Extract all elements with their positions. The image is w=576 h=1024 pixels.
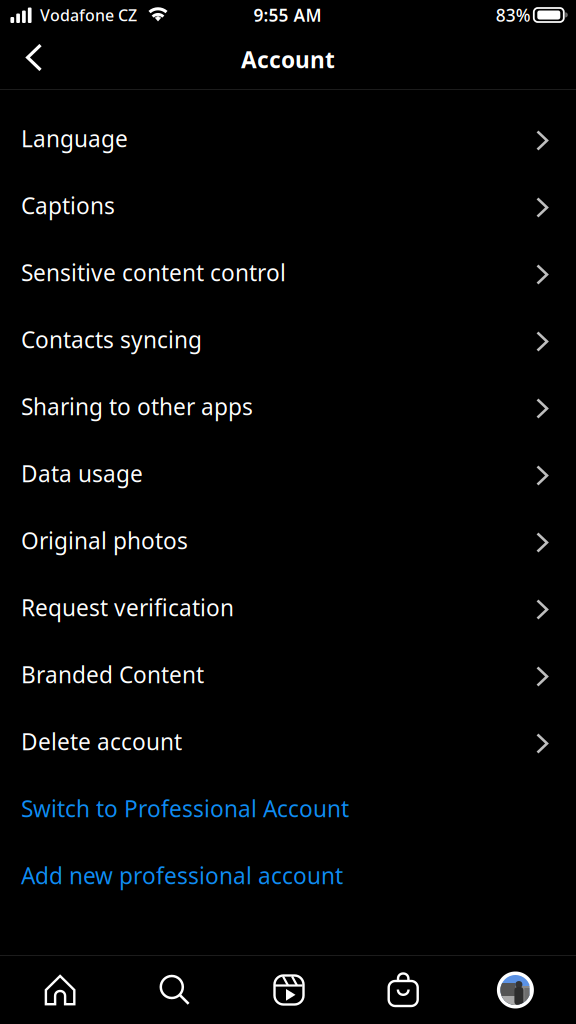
staticText: Data usage [21, 458, 143, 488]
staticText: Contacts syncing [21, 324, 202, 354]
staticText: Sensitive content control [21, 257, 286, 287]
staticText: Branded Content [21, 659, 204, 689]
staticText: 9:55 AM [253, 3, 321, 26]
button[interactable]: Add new professional account [0, 842, 576, 909]
staticText: Request verification [21, 592, 234, 622]
button[interactable]: Data usage [0, 440, 576, 507]
staticText: Language [21, 123, 128, 153]
staticText: Sharing to other apps [21, 391, 253, 421]
staticText: Add new professional account [21, 860, 343, 890]
staticText: 83% [496, 3, 531, 26]
button[interactable]: Search [115, 974, 230, 1005]
button[interactable]: Switch to Professional Account [0, 775, 576, 842]
button[interactable]: Contacts syncing [0, 306, 576, 373]
staticText: Original photos [21, 525, 188, 555]
staticText: Switch to Professional Account [21, 793, 349, 823]
button[interactable]: Sharing to other apps [0, 373, 576, 440]
button[interactable]: Profile [461, 971, 576, 1008]
staticText: Vodafone CZ [40, 4, 137, 26]
button[interactable]: Shop [346, 973, 461, 1006]
staticText: Account [241, 44, 335, 74]
button[interactable]: Language [0, 105, 576, 172]
button[interactable]: Branded Content [0, 641, 576, 708]
staticText: Delete account [21, 726, 182, 756]
button[interactable]: Request verification [0, 574, 576, 641]
button[interactable]: Reels [230, 974, 346, 1005]
staticText: Captions [21, 190, 115, 220]
button[interactable]: Back [0, 31, 59, 87]
button[interactable]: Delete account [0, 708, 576, 775]
button[interactable]: Original photos [0, 507, 576, 574]
button[interactable]: Home [0, 974, 115, 1005]
button[interactable]: Sensitive content control [0, 239, 576, 306]
button[interactable]: Captions [0, 172, 576, 239]
